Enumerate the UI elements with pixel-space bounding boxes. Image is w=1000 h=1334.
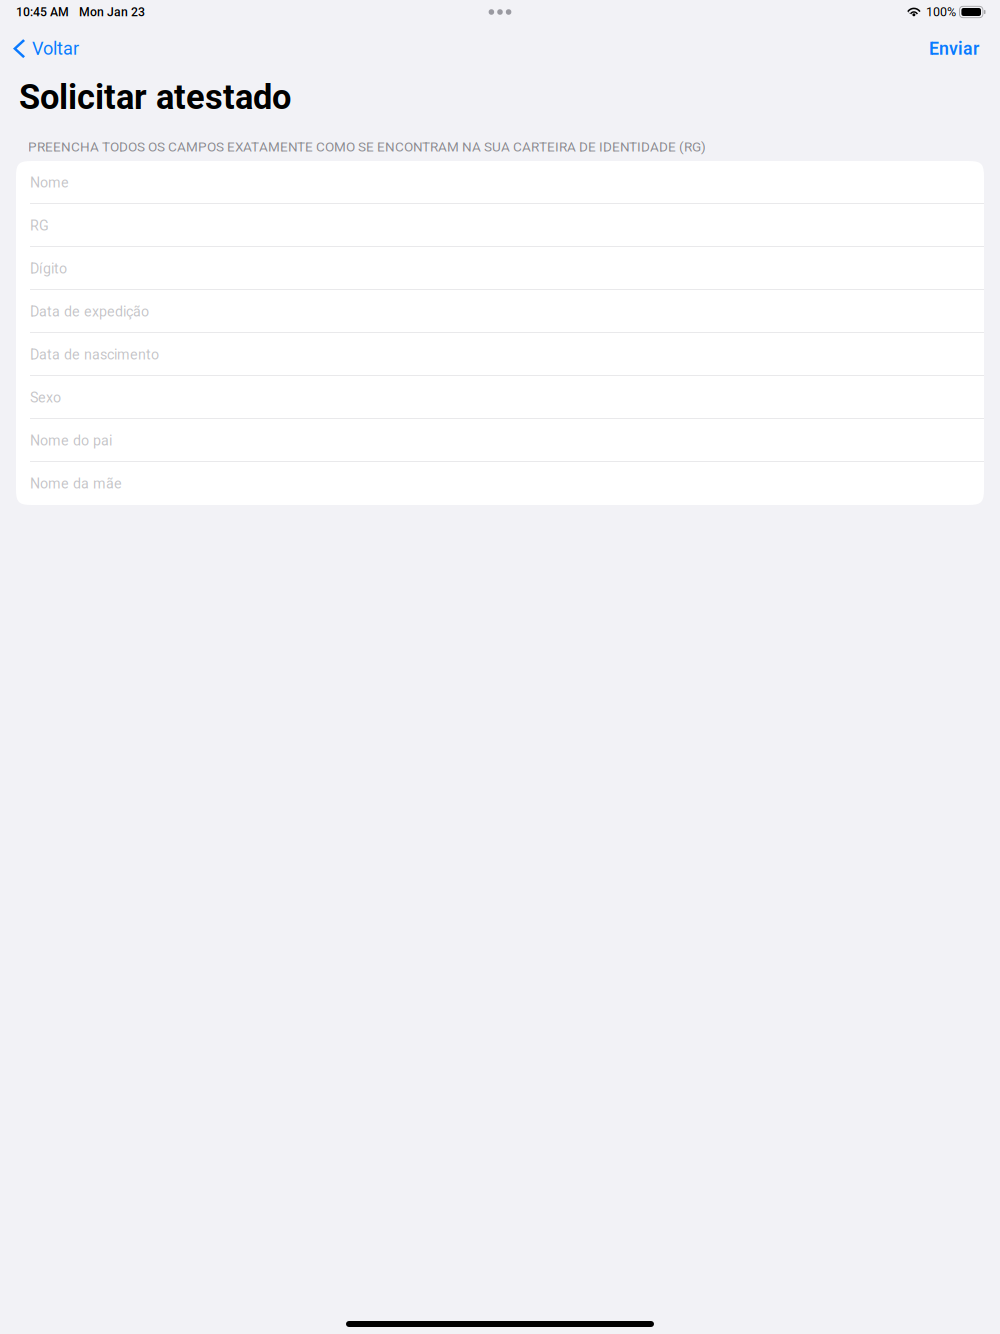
staticText: Data de nascimento: [30, 346, 159, 363]
staticText: PREENCHA TODOS OS CAMPOS EXATAMENTE COMO…: [28, 139, 706, 155]
staticText: 10:45 AM: [16, 5, 69, 19]
staticText: Mon Jan 23: [79, 5, 145, 19]
staticText: Dígito: [30, 260, 67, 277]
button[interactable]: Sexo: [16, 376, 984, 419]
staticText: Nome: [30, 174, 69, 191]
staticText: RG: [30, 217, 49, 234]
staticText: Voltar: [32, 38, 79, 59]
button[interactable]: Data de nascimento: [16, 333, 984, 376]
staticText: 100%: [926, 5, 956, 19]
button[interactable]: RG: [16, 204, 984, 247]
staticText: Sexo: [30, 389, 61, 406]
staticText: Solicitar atestado: [19, 77, 291, 117]
button[interactable]: Nome do pai: [16, 419, 984, 462]
button[interactable]: Enviar: [913, 31, 1000, 66]
button[interactable]: Voltar: [0, 31, 93, 66]
staticText: Data de expedição: [30, 303, 149, 320]
button[interactable]: Data de expedição: [16, 290, 984, 333]
button[interactable]: Nome da mãe: [16, 462, 984, 505]
button[interactable]: Dígito: [16, 247, 984, 290]
button[interactable]: Nome: [16, 161, 984, 204]
staticText: Nome da mãe: [30, 475, 122, 492]
staticText: Nome do pai: [30, 432, 112, 449]
staticText: Enviar: [929, 38, 979, 59]
